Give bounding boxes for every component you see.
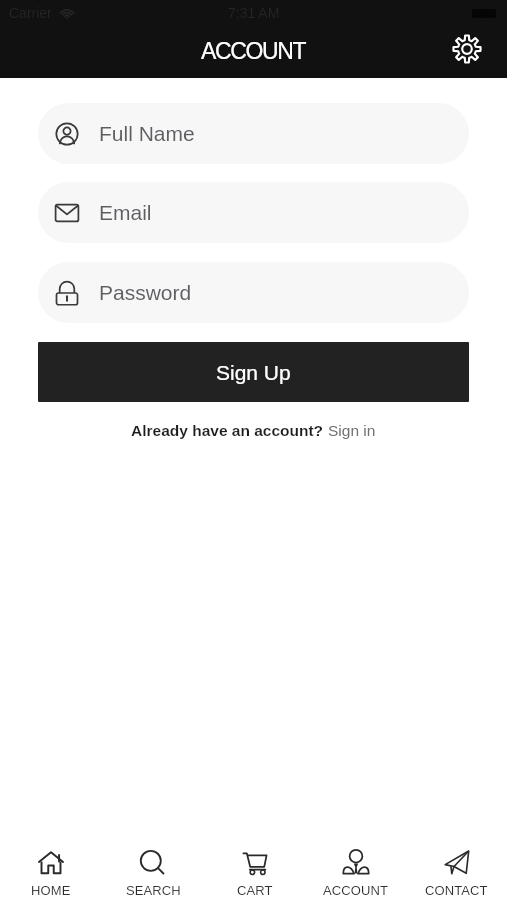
button[interactable]: ACCOUNT [305, 828, 406, 898]
staticText: Email [99, 201, 152, 224]
staticText: CART [237, 883, 273, 898]
staticText: CONTACT [425, 883, 488, 898]
button[interactable]: Sign Up [38, 342, 469, 402]
staticText: Already have an account? [131, 422, 328, 439]
staticText: Sign in [328, 422, 376, 439]
button[interactable]: CART [204, 828, 305, 898]
button[interactable]: HOME [0, 828, 102, 898]
button[interactable]: Full name field [38, 103, 469, 164]
staticText: 7:31 AM [228, 5, 280, 21]
button[interactable]: Password field [38, 262, 469, 323]
staticText: ACCOUNT [201, 38, 306, 64]
staticText: HOME [31, 883, 71, 898]
button[interactable]: Email field [38, 182, 469, 243]
button[interactable]: Settings [449, 31, 485, 67]
staticText: Full Name [99, 122, 195, 145]
staticText: SEARCH [126, 883, 181, 898]
button[interactable]: CONTACT [406, 828, 507, 898]
staticText: Password [99, 281, 192, 304]
staticText: Sign Up [216, 361, 291, 384]
button[interactable]: SEARCH [102, 828, 204, 898]
staticText: Carrier [9, 5, 52, 21]
button[interactable]: Sign in [328, 422, 376, 439]
staticText: ACCOUNT [323, 883, 388, 898]
